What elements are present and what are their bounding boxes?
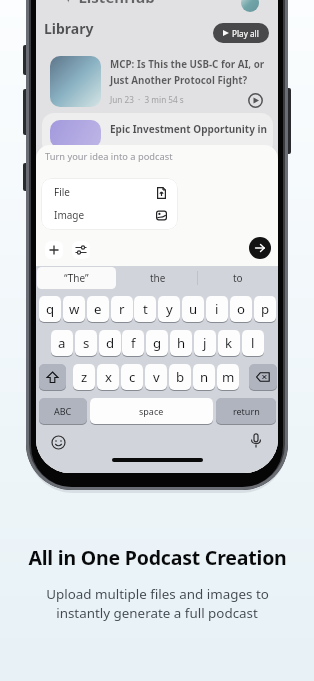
- button[interactable]: space: [90, 398, 213, 424]
- staticText: r: [119, 300, 125, 318]
- staticText: Jun 23 · 3 min 54 s: [110, 94, 184, 105]
- staticText: x: [105, 368, 112, 386]
- staticText: z: [81, 368, 88, 386]
- button[interactable]: b: [169, 364, 191, 390]
- staticText: u: [189, 300, 198, 318]
- staticText: n: [200, 368, 209, 386]
- staticText: Epic Investment Opportunity in: [110, 122, 267, 136]
- button[interactable]: c: [121, 364, 143, 390]
- staticText: p: [261, 300, 270, 318]
- button[interactable]: [39, 364, 66, 390]
- button[interactable]: x: [97, 364, 119, 390]
- staticText: m: [222, 368, 235, 386]
- staticText: q: [46, 300, 55, 318]
- button[interactable]: [72, 241, 90, 259]
- staticText: k: [225, 334, 233, 352]
- button[interactable]: [50, 56, 101, 107]
- staticText: All in One Podcast Creation: [28, 544, 287, 571]
- staticText: Library: [44, 19, 94, 38]
- button[interactable]: [249, 237, 271, 259]
- button[interactable]: j: [194, 330, 216, 356]
- staticText: File: [54, 185, 70, 199]
- button[interactable]: h: [170, 330, 192, 356]
- staticText: Play all: [232, 28, 259, 39]
- button[interactable]: return: [216, 398, 276, 424]
- staticText: MCP: Is This the USB-C for AI, or: [110, 58, 265, 71]
- button[interactable]: a: [51, 330, 73, 356]
- staticText: ABC: [54, 405, 72, 417]
- button[interactable]: o: [230, 296, 252, 322]
- button[interactable]: r: [111, 296, 133, 322]
- button[interactable]: [45, 241, 63, 259]
- button[interactable]: [249, 364, 277, 390]
- button[interactable]: to: [198, 267, 278, 289]
- staticText: space: [139, 405, 164, 417]
- button[interactable]: y: [158, 296, 180, 322]
- staticText: v: [153, 368, 160, 386]
- staticText: t: [143, 300, 148, 318]
- staticText: “The”: [64, 271, 89, 285]
- staticText: Turn your idea into a podcast: [45, 150, 173, 163]
- staticText: instantly generate a full podcast: [56, 604, 258, 622]
- button[interactable]: p: [254, 296, 276, 322]
- staticText: Just Another Protocol Fight?: [110, 74, 248, 87]
- button[interactable]: Play all: [213, 23, 269, 43]
- button[interactable]: u: [182, 296, 204, 322]
- staticText: w: [69, 300, 80, 318]
- staticText: the: [150, 271, 166, 285]
- staticText: h: [177, 334, 186, 352]
- staticText: to: [233, 271, 243, 285]
- button[interactable]: [41, 178, 178, 204]
- button[interactable]: ABC: [39, 398, 87, 424]
- button[interactable]: the: [117, 267, 198, 289]
- button[interactable]: w: [63, 296, 85, 322]
- button[interactable]: k: [218, 330, 240, 356]
- staticText: return: [233, 405, 260, 417]
- staticText: f: [131, 334, 136, 352]
- staticText: ✦ ListenHub: [62, 0, 155, 7]
- staticText: l: [251, 334, 255, 352]
- button[interactable]: g: [146, 330, 168, 356]
- staticText: a: [58, 334, 66, 352]
- button[interactable]: s: [75, 330, 97, 356]
- staticText: Upload multiple files and images to: [46, 585, 269, 603]
- staticText: Image: [54, 208, 85, 222]
- staticText: b: [176, 368, 185, 386]
- staticText: s: [83, 334, 90, 352]
- button[interactable]: n: [193, 364, 215, 390]
- button[interactable]: [41, 204, 178, 230]
- button[interactable]: i: [206, 296, 228, 322]
- staticText: d: [106, 334, 115, 352]
- button[interactable]: v: [145, 364, 167, 390]
- button[interactable]: e: [87, 296, 109, 322]
- button[interactable]: d: [99, 330, 121, 356]
- button[interactable]: t: [134, 296, 156, 322]
- staticText: e: [94, 300, 102, 318]
- staticText: g: [153, 334, 162, 352]
- staticText: i: [215, 300, 219, 318]
- staticText: j: [203, 334, 207, 352]
- staticText: y: [166, 300, 173, 318]
- staticText: c: [129, 368, 136, 386]
- button[interactable]: l: [242, 330, 264, 356]
- button[interactable]: “The”: [37, 267, 116, 289]
- button[interactable]: f: [122, 330, 144, 356]
- button[interactable]: z: [73, 364, 95, 390]
- staticText: o: [237, 300, 245, 318]
- button[interactable]: q: [39, 296, 61, 322]
- button[interactable]: m: [217, 364, 239, 390]
